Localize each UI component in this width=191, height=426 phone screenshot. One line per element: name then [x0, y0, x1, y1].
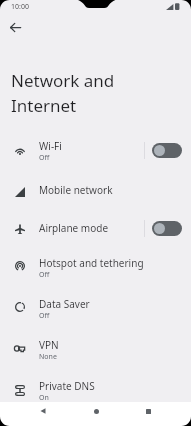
button[interactable]: Data Saver — [0, 288, 191, 329]
staticText: None — [39, 352, 57, 362]
staticText: Airplane mode — [39, 221, 109, 235]
staticText: Mobile network — [39, 183, 113, 197]
staticText: Hotspot and tethering — [39, 256, 144, 270]
button[interactable]: Back — [4, 16, 26, 38]
staticText: Off — [39, 153, 50, 163]
staticText: Off — [39, 270, 50, 280]
staticText: On — [39, 393, 49, 403]
staticText: Off — [39, 311, 50, 321]
button[interactable]: Wi-Fi — [0, 130, 191, 171]
button[interactable]: Recent apps — [139, 402, 157, 420]
button[interactable]: Private DNS — [0, 370, 191, 411]
button[interactable]: Airplane mode — [0, 209, 191, 247]
button[interactable]: Hotspot and tethering — [0, 247, 191, 288]
staticText: Private DNS — [39, 379, 95, 393]
button[interactable]: Home — [87, 402, 105, 420]
button[interactable]: Mobile network — [0, 171, 191, 209]
staticText: 10:00 — [11, 2, 29, 12]
button[interactable]: Back — [34, 402, 52, 420]
staticText: VPN — [39, 338, 59, 352]
button[interactable]: Toggle Airplane mode — [152, 221, 182, 236]
button[interactable]: Toggle Wi-Fi — [152, 143, 182, 158]
staticText: Data Saver — [39, 297, 90, 311]
staticText: Network and Internet — [11, 69, 136, 117]
staticText: Wi-Fi — [39, 139, 62, 153]
button[interactable]: VPN — [0, 329, 191, 370]
